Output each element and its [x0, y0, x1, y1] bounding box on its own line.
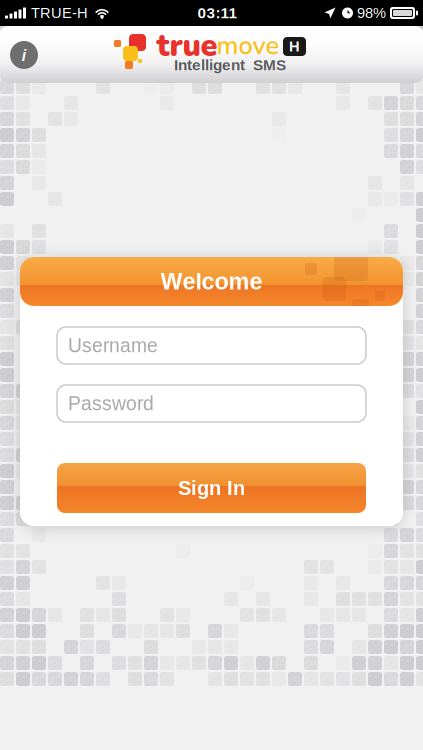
- staticText: 98%: [357, 5, 386, 21]
- staticText: TRUE-H: [31, 5, 88, 21]
- staticText: 03:11: [197, 4, 236, 21]
- button[interactable]: Sign In: [57, 463, 366, 513]
- staticText: Intelligent SMS: [174, 56, 286, 73]
- staticText: H: [289, 38, 300, 55]
- staticText: i: [21, 45, 26, 65]
- button[interactable]: Info: [10, 41, 38, 69]
- staticText: Sign In: [178, 477, 245, 499]
- staticText: move: [216, 29, 279, 63]
- staticText: Welcome: [160, 268, 262, 295]
- staticText: Password: [68, 393, 154, 414]
- staticText: true: [156, 25, 217, 67]
- staticText: Username: [68, 335, 158, 356]
